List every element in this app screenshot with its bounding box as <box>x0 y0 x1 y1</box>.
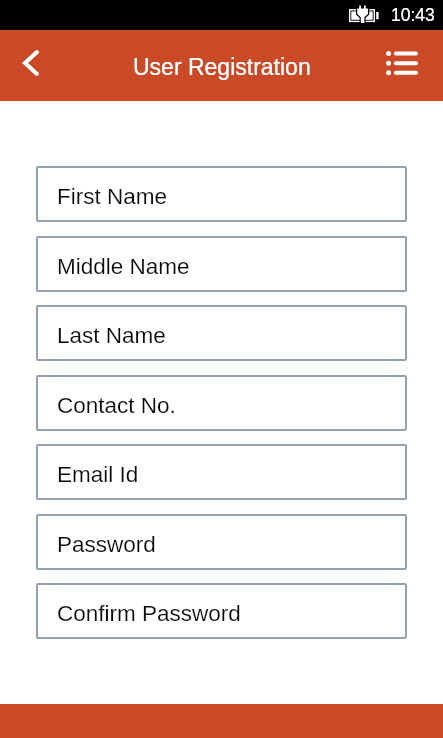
button[interactable]: Last Name <box>36 305 407 361</box>
staticText: Last Name <box>57 323 166 348</box>
staticText: Middle Name <box>57 254 190 279</box>
staticText: 10:43 <box>391 5 435 25</box>
button[interactable]: Password <box>36 514 407 570</box>
button[interactable]: Contact No. <box>36 375 407 431</box>
staticText: Email Id <box>57 462 139 487</box>
staticText: Contact No. <box>57 393 176 418</box>
button[interactable]: Menu <box>377 30 443 101</box>
staticText: First Name <box>57 184 168 209</box>
button[interactable]: Confirm Password <box>36 583 407 639</box>
button[interactable]: Email Id <box>36 444 407 500</box>
button[interactable]: Middle Name <box>36 236 407 292</box>
staticText: Password <box>57 532 156 557</box>
button[interactable]: Back <box>0 30 62 101</box>
staticText: User Registration <box>133 54 311 80</box>
button[interactable]: First Name <box>36 166 407 222</box>
staticText: Confirm Password <box>57 601 241 626</box>
